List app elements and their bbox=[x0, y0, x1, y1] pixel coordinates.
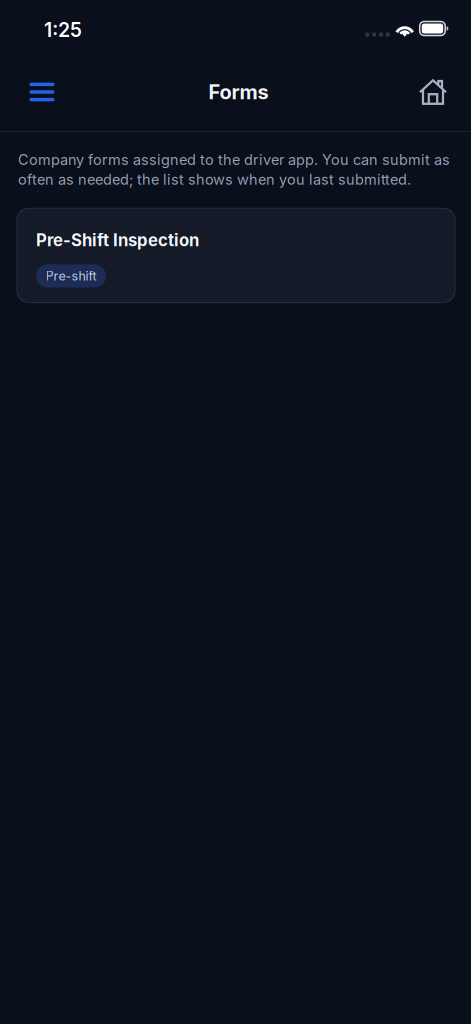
staticText: Forms bbox=[208, 80, 268, 104]
staticText: Pre-Shift Inspection bbox=[36, 230, 199, 250]
staticText: Pre-shift bbox=[45, 268, 96, 284]
button[interactable]: Menu bbox=[18, 68, 66, 116]
staticText: 1:25 bbox=[44, 18, 82, 42]
staticText: Company forms assigned to the driver app… bbox=[18, 151, 450, 188]
button[interactable]: Home bbox=[409, 68, 457, 116]
button[interactable]: Pre-Shift Inspection bbox=[17, 208, 455, 302]
